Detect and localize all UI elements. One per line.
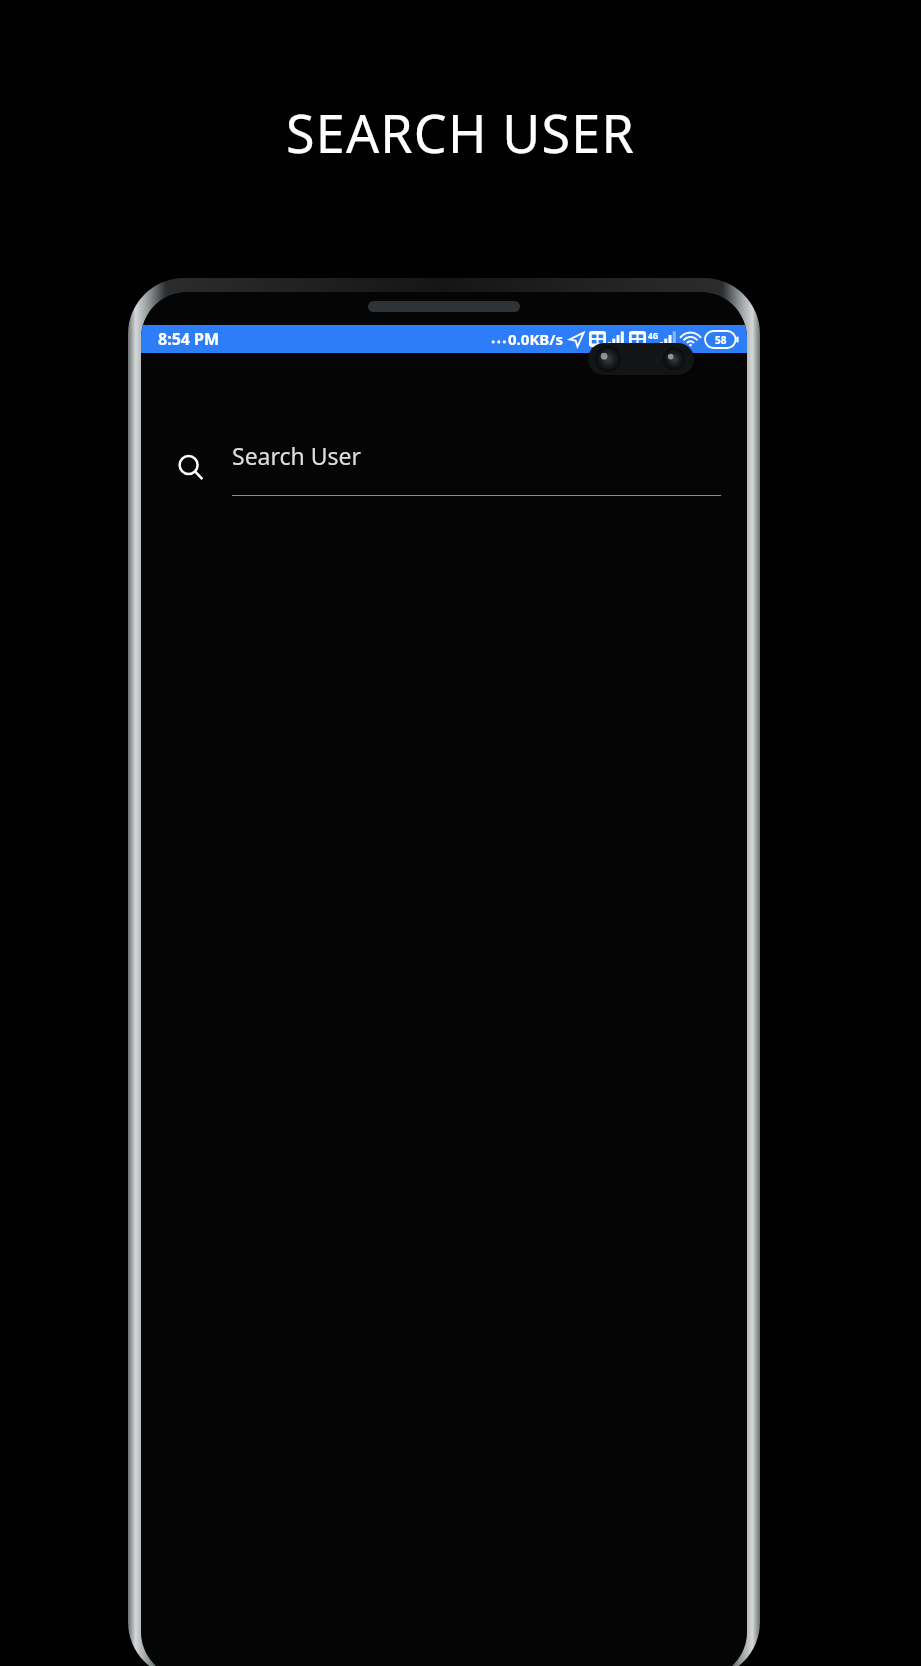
other: Search bbox=[174, 451, 208, 485]
staticText: 0.0KB/s bbox=[508, 329, 564, 349]
staticText: SEARCH USER bbox=[0, 97, 921, 168]
staticText: Search User bbox=[232, 440, 362, 471]
button[interactable]: Search bbox=[174, 440, 721, 496]
staticText: 58 bbox=[715, 333, 727, 347]
staticText: 4G bbox=[648, 330, 659, 341]
staticText: 8:54 PM bbox=[158, 328, 220, 350]
